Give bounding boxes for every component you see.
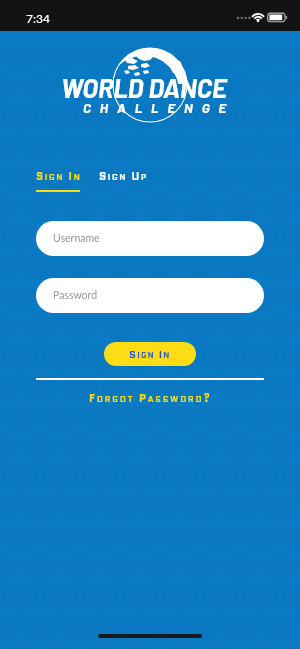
staticText: SIGN IN [36, 168, 82, 184]
staticText: 7:34 [26, 11, 50, 25]
staticText: Username [53, 232, 100, 245]
button[interactable]: Password [36, 278, 264, 313]
staticText: FORGOT PASSWORD? [89, 390, 212, 406]
staticText: SIGN IN [129, 347, 171, 362]
staticText: SIGN UP [99, 168, 148, 184]
button[interactable]: SIGN UP [99, 168, 148, 184]
staticText: CHALLENGE [83, 99, 236, 115]
other: Status icons [0, 0, 300, 31]
button[interactable]: SIGN IN [36, 168, 82, 184]
button[interactable]: SIGN IN [104, 342, 196, 366]
button[interactable]: FORGOT PASSWORD? [89, 390, 212, 406]
staticText: WORLD DANCE [61, 72, 227, 103]
button[interactable]: Username [36, 221, 264, 256]
staticText: Password [53, 289, 98, 302]
